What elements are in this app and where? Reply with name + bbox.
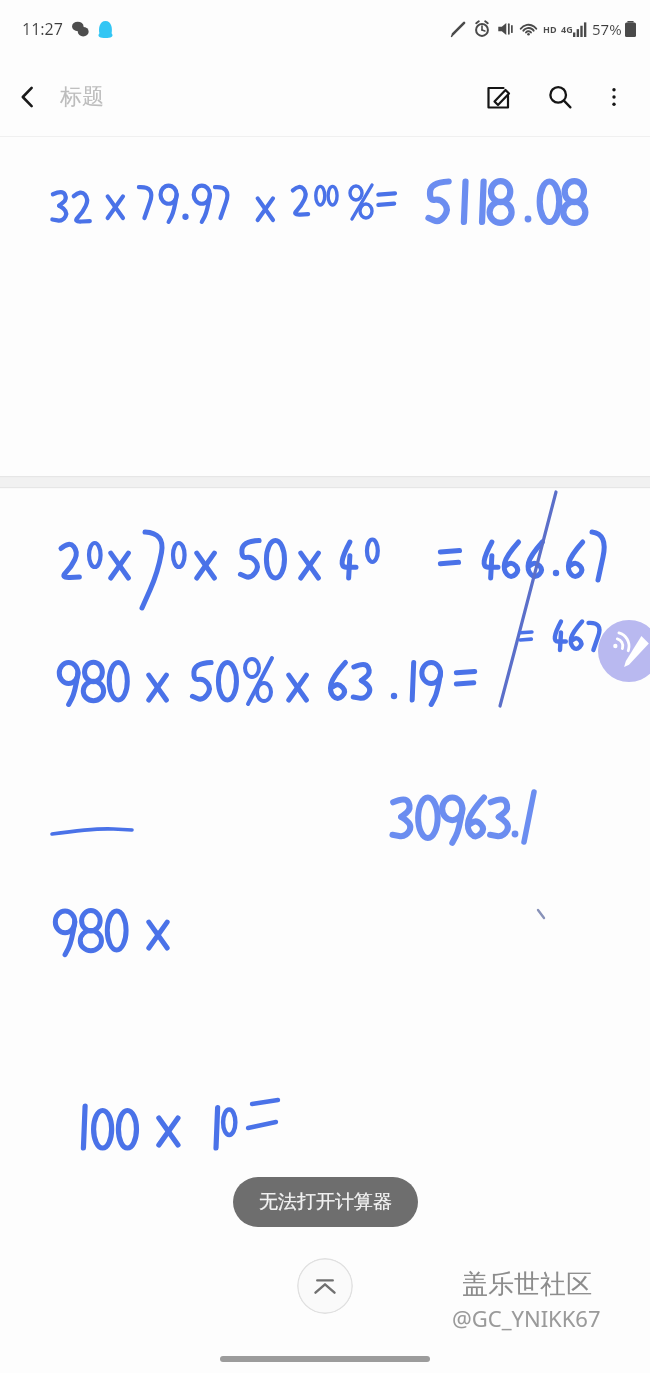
button[interactable]: Search: [536, 73, 584, 121]
button[interactable]: Back: [0, 69, 56, 125]
staticText: 4G: [561, 23, 573, 35]
staticText: 11:27: [22, 18, 63, 40]
button[interactable]: 标题: [56, 83, 112, 111]
staticText: 无法打开计算器: [259, 1190, 392, 1214]
staticText: 标题: [60, 83, 104, 111]
staticText: 盖乐世社区: [462, 1268, 592, 1301]
staticText: @GC_YNIKK67: [452, 1303, 601, 1333]
button[interactable]: More options: [592, 75, 636, 119]
button[interactable]: Collapse toolbar: [297, 1258, 353, 1314]
staticText: 57%: [592, 19, 622, 39]
button[interactable]: Compose note: [474, 73, 522, 121]
button[interactable]: Pen tool: [598, 620, 650, 682]
staticText: HD: [543, 23, 557, 35]
button[interactable]: 无法打开计算器: [233, 1177, 418, 1227]
